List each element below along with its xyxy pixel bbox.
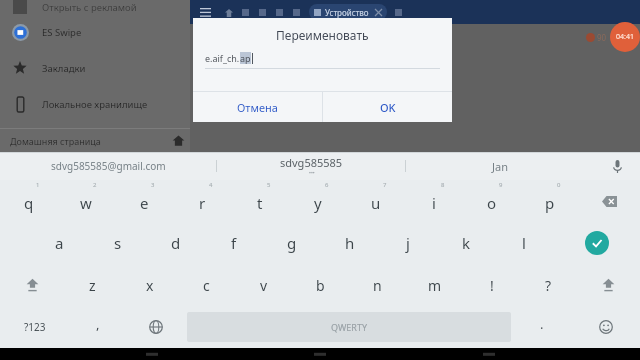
staticText: 9 — [499, 181, 503, 189]
button[interactable]: 6 — [289, 180, 347, 222]
button[interactable]: Shift — [0, 264, 64, 306]
button[interactable]: 2 — [57, 180, 115, 222]
button[interactable]: Backspace — [579, 180, 640, 222]
staticText: OK — [380, 100, 396, 115]
staticText: k — [462, 233, 471, 253]
button[interactable]: z — [64, 264, 121, 306]
button[interactable]: m — [406, 264, 463, 306]
staticText: o — [487, 193, 497, 213]
staticText: 6 — [325, 181, 329, 189]
button[interactable]: Menu — [196, 3, 214, 21]
button[interactable]: x — [121, 264, 178, 306]
button[interactable]: c — [178, 264, 235, 306]
staticText: f — [231, 233, 237, 253]
button[interactable]: Recents — [472, 348, 506, 360]
staticText: w — [80, 193, 92, 213]
button[interactable]: 9 — [463, 180, 521, 222]
button[interactable]: Home tab — [222, 6, 235, 19]
button[interactable]: a — [30, 222, 89, 264]
button[interactable]: Локальное хранилище — [0, 86, 195, 122]
staticText: Локальное хранилище — [42, 98, 148, 111]
staticText: m — [428, 276, 442, 295]
staticText: d — [171, 233, 181, 253]
button[interactable]: ?123 — [0, 306, 69, 348]
staticText: i — [432, 193, 436, 213]
button[interactable]: Отмена — [193, 92, 322, 122]
button[interactable]: 8 — [405, 180, 463, 222]
staticText: 5 — [267, 181, 271, 189]
staticText: sdvg585585 — [280, 155, 343, 170]
staticText: u — [371, 193, 381, 213]
button[interactable]: Change language — [127, 306, 185, 348]
button[interactable]: Домашняя страница — [0, 129, 195, 152]
button[interactable]: ! — [463, 264, 520, 306]
staticText: c — [203, 276, 210, 295]
staticText: s — [114, 233, 122, 253]
button[interactable]: 5 — [231, 180, 289, 222]
button[interactable]: ES Swipe — [0, 14, 195, 50]
staticText: QWERTY — [331, 321, 368, 333]
button[interactable]: Tab — [256, 6, 269, 19]
button[interactable]: v — [235, 264, 292, 306]
button[interactable]: sdvg585585 — [217, 152, 405, 180]
button[interactable]: g — [263, 222, 321, 264]
button[interactable]: h — [321, 222, 379, 264]
button[interactable]: Закладки — [0, 50, 195, 86]
button[interactable]: Открыть с рекламой — [0, 0, 195, 14]
button[interactable]: Home — [303, 348, 337, 360]
button[interactable]: Jan — [406, 152, 594, 180]
staticText: 04:41 — [616, 32, 634, 42]
button[interactable]: Tab — [290, 6, 303, 19]
button[interactable]: l — [495, 222, 553, 264]
button[interactable]: Emoji — [571, 306, 640, 348]
staticText: h — [345, 233, 355, 253]
button[interactable]: , — [69, 306, 127, 348]
staticText: . — [540, 315, 544, 333]
button[interactable]: QWERTY — [187, 312, 511, 342]
button[interactable]: Add tab — [392, 6, 405, 19]
staticText: 7 — [383, 181, 387, 189]
button[interactable]: d — [147, 222, 205, 264]
button[interactable]: Enter — [553, 222, 640, 264]
staticText: Переименовать — [276, 27, 369, 43]
staticText: sdvg585585@gmail.com — [51, 159, 166, 173]
staticText: 8 — [441, 181, 445, 189]
button[interactable]: k — [437, 222, 495, 264]
staticText: a — [55, 233, 64, 253]
button[interactable]: 4 — [173, 180, 231, 222]
button[interactable]: 3 — [115, 180, 173, 222]
staticText: 3 — [151, 181, 155, 189]
staticText: Закладки — [42, 62, 86, 75]
button[interactable]: Устройство — [309, 4, 387, 20]
button[interactable]: ? — [520, 264, 577, 306]
button[interactable]: Shift right — [577, 264, 640, 306]
staticText: Домашняя страница — [10, 135, 101, 147]
button[interactable]: 7 — [347, 180, 405, 222]
button[interactable]: . — [513, 306, 571, 348]
staticText: b — [316, 276, 325, 295]
button[interactable]: Back — [135, 348, 169, 360]
button[interactable]: 0 — [521, 180, 579, 222]
button[interactable]: Tab — [239, 6, 252, 19]
staticText: p — [545, 193, 555, 213]
staticText: Устройство — [325, 7, 369, 18]
button[interactable]: j — [379, 222, 437, 264]
staticText: , — [96, 315, 100, 333]
button[interactable]: Tab — [273, 6, 286, 19]
button[interactable]: 1 — [0, 180, 57, 222]
button[interactable]: f — [205, 222, 263, 264]
button[interactable]: sdvg585585@gmail.com — [0, 152, 216, 180]
staticText: 0 — [557, 181, 561, 189]
staticText: z — [89, 276, 96, 295]
staticText: ? — [545, 276, 552, 295]
staticText: 4 — [209, 181, 213, 189]
button[interactable]: Voice input — [594, 152, 640, 180]
button[interactable]: OK — [323, 92, 452, 122]
staticText: t — [257, 193, 263, 213]
button[interactable]: b — [292, 264, 349, 306]
button[interactable]: n — [349, 264, 406, 306]
staticText: 2 — [93, 181, 97, 189]
button[interactable]: s — [89, 222, 147, 264]
staticText: q — [24, 193, 34, 213]
staticText: v — [260, 276, 268, 295]
